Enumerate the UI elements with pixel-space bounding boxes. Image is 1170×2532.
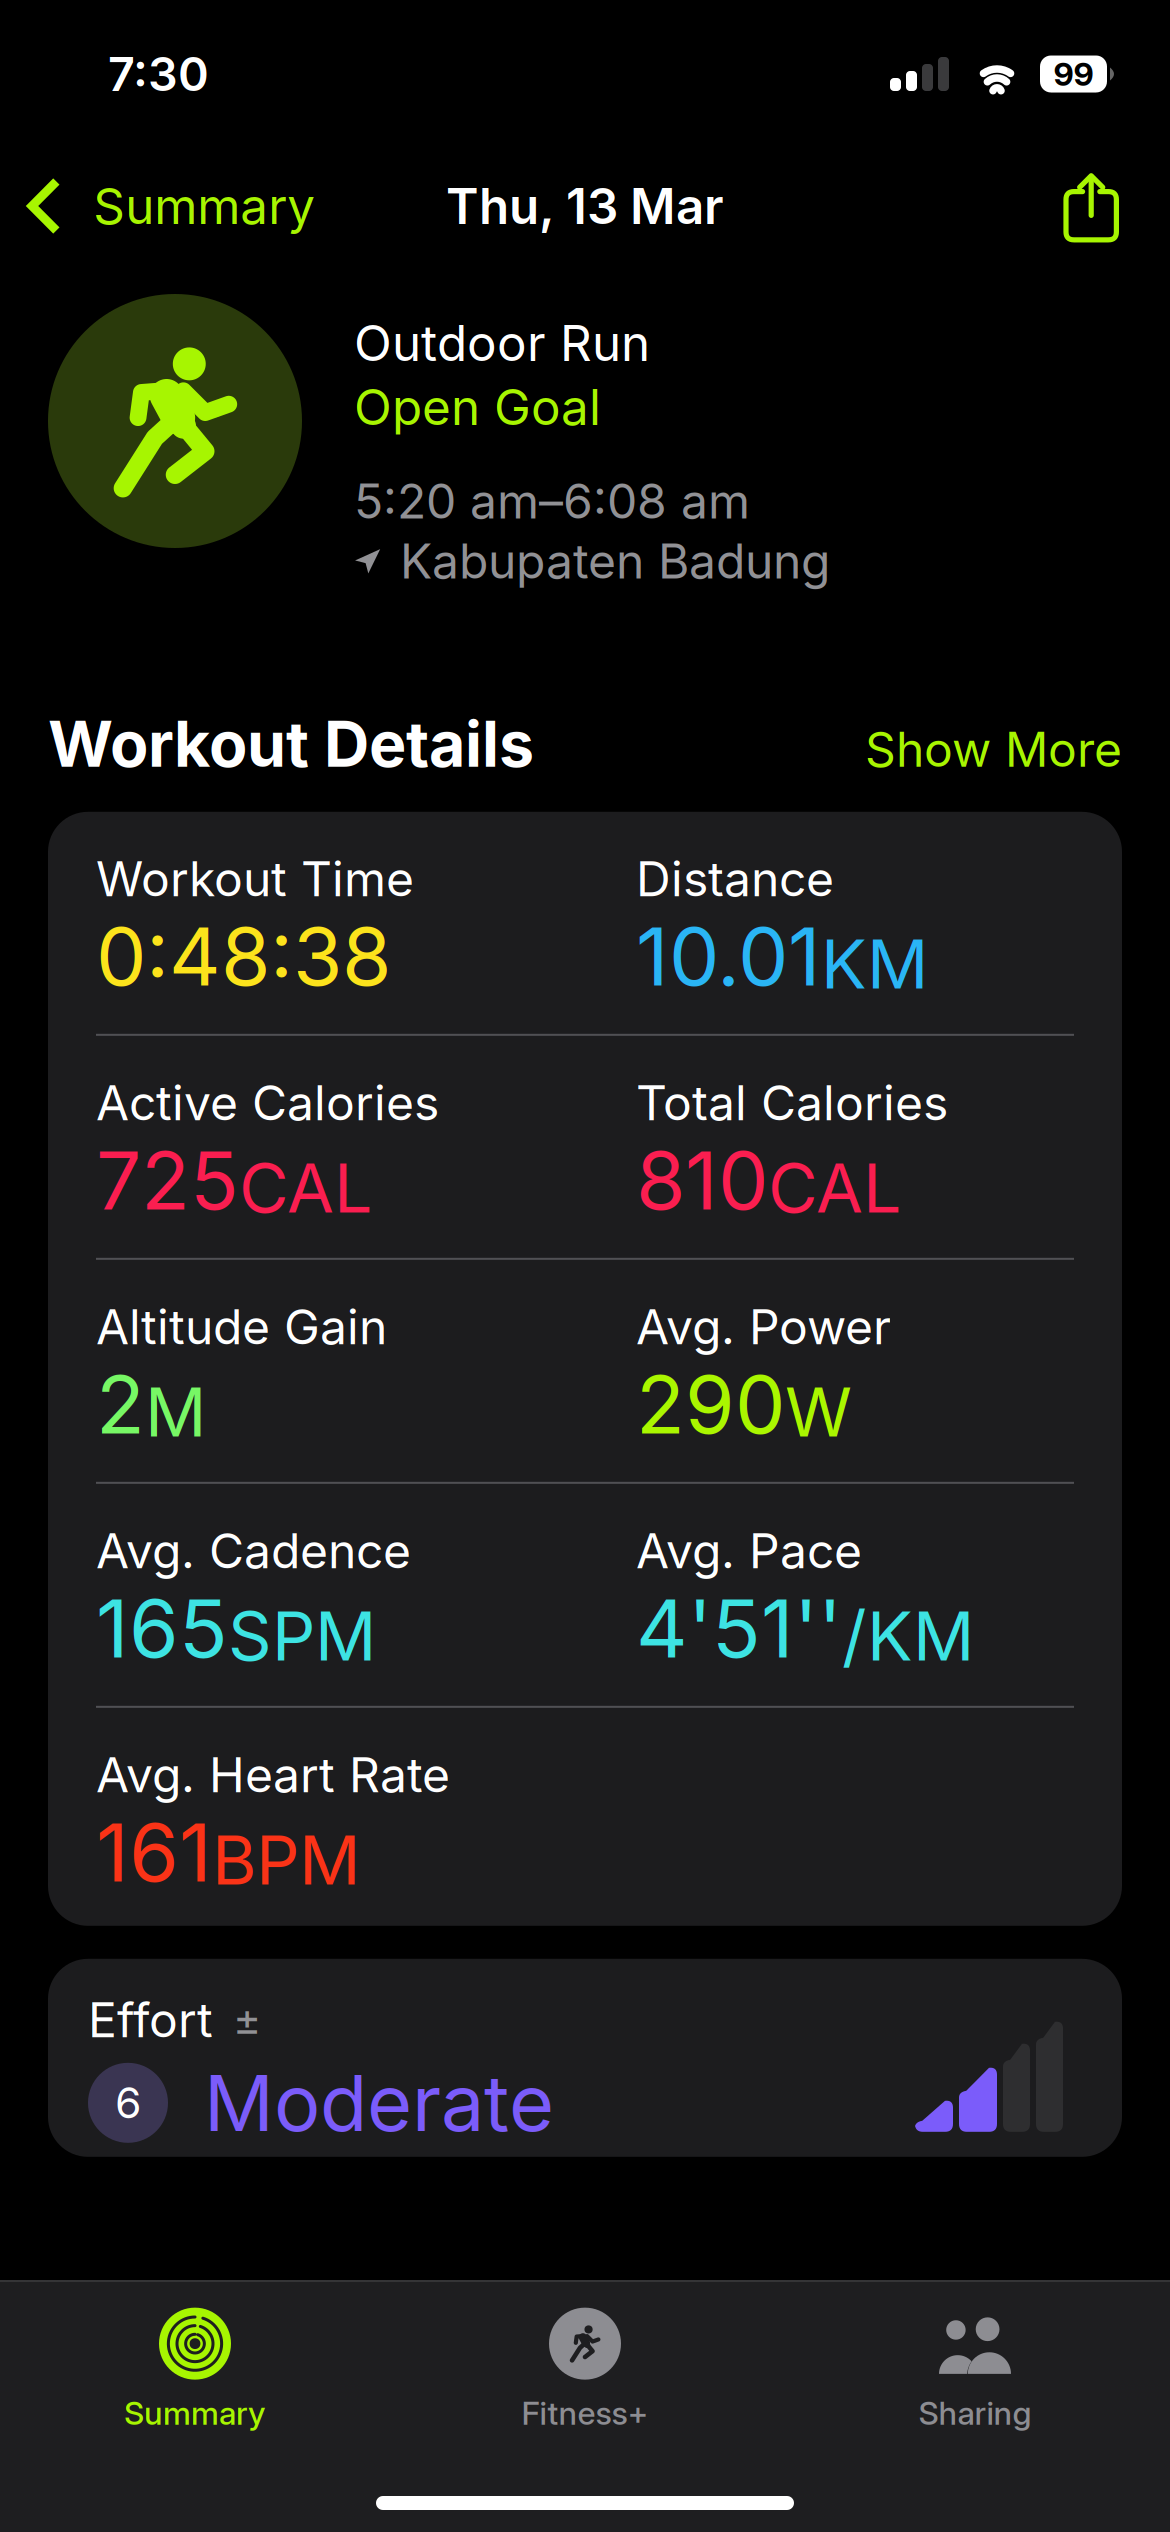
staticText: KM: [821, 922, 928, 1005]
staticText: Avg. Power: [636, 1298, 891, 1356]
staticText: 4'51'': [636, 1580, 842, 1677]
button[interactable]: Summary: [0, 2300, 390, 2440]
staticText: SPM: [228, 1594, 376, 1677]
staticText: Avg. Cadence: [96, 1522, 411, 1580]
staticText: 165: [96, 1580, 228, 1677]
staticText: 5:20 am–6:08 am: [354, 472, 750, 530]
staticText: Summary: [93, 176, 315, 236]
staticText: 2: [96, 1356, 145, 1453]
button[interactable]: Show More: [865, 720, 1122, 778]
staticText: Workout Details: [48, 706, 534, 782]
staticText: Show More: [865, 720, 1122, 778]
staticText: Summary: [124, 2394, 266, 2432]
staticText: ±: [233, 1994, 261, 2046]
staticText: 810: [636, 1132, 768, 1229]
staticText: M: [145, 1370, 206, 1453]
button[interactable]: Effort: [0, 1926, 1122, 2157]
staticText: Workout Time: [96, 850, 414, 908]
staticText: CAL: [768, 1146, 901, 1229]
staticText: 0:48:38: [96, 908, 391, 1005]
staticText: /KM: [842, 1594, 974, 1677]
button[interactable]: Share: [1032, 148, 1170, 264]
staticText: Moderate: [204, 2056, 554, 2150]
staticText: W: [785, 1370, 852, 1453]
staticText: Outdoor Run: [354, 313, 650, 373]
staticText: Thu, 13 Mar: [446, 176, 724, 236]
button[interactable]: Summary: [0, 148, 335, 264]
staticText: Total Calories: [636, 1074, 948, 1132]
staticText: Sharing: [918, 2394, 1031, 2432]
staticText: Open Goal: [354, 377, 601, 437]
staticText: 6: [115, 2077, 141, 2129]
staticText: CAL: [239, 1146, 372, 1229]
staticText: Avg. Pace: [636, 1522, 862, 1580]
button[interactable]: Sharing: [780, 2300, 1170, 2440]
staticText: Fitness+: [521, 2394, 648, 2432]
staticText: Distance: [636, 850, 834, 908]
staticText: BPM: [212, 1818, 360, 1901]
staticText: 99: [1053, 55, 1093, 93]
staticText: 725: [96, 1132, 239, 1229]
staticText: 10.01: [636, 908, 821, 1005]
staticText: 7:30: [108, 46, 209, 102]
staticText: Altitude Gain: [96, 1298, 387, 1356]
staticText: Active Calories: [96, 1074, 439, 1132]
staticText: Effort: [88, 1991, 213, 2049]
staticText: 290: [636, 1356, 785, 1453]
button[interactable]: Fitness+: [390, 2300, 780, 2440]
staticText: Avg. Heart Rate: [96, 1746, 450, 1804]
staticText: Kabupaten Badung: [400, 532, 830, 590]
staticText: 161: [96, 1804, 212, 1901]
